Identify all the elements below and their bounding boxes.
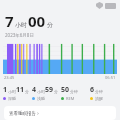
staticText: 分 bbox=[54, 89, 58, 94]
button[interactable]: 查看睡眠报告 › bbox=[4, 106, 116, 120]
other: Shield bbox=[96, 2, 103, 9]
staticText: 00 bbox=[28, 11, 46, 31]
staticText: 分钟 bbox=[95, 89, 103, 94]
staticText: 23:45 bbox=[4, 75, 15, 80]
staticText: 浅睡 bbox=[37, 96, 45, 101]
staticText: 06:51 bbox=[105, 75, 116, 80]
staticText: 1 bbox=[3, 85, 8, 95]
staticText: REM bbox=[66, 96, 75, 101]
staticText: 小时 bbox=[15, 21, 27, 29]
staticText: 深睡 bbox=[8, 96, 16, 101]
staticText: 2023年6月8日 bbox=[5, 32, 34, 38]
staticText: 分 bbox=[25, 89, 29, 94]
staticText: 11 bbox=[16, 85, 25, 95]
staticText: 6 bbox=[90, 85, 95, 95]
button[interactable]: Sleep stages chart bbox=[3, 42, 117, 74]
staticText: 清醒 bbox=[95, 96, 103, 101]
button[interactable]: 4 bbox=[31, 85, 60, 101]
staticText: 小时 bbox=[37, 89, 45, 94]
staticText: 查看睡眠报告 › bbox=[9, 110, 39, 116]
staticText: 7 bbox=[5, 11, 14, 31]
button[interactable]: 6 bbox=[89, 85, 118, 101]
staticText: 小时 bbox=[8, 89, 16, 94]
other: Battery bbox=[105, 3, 116, 9]
staticText: 4 bbox=[32, 85, 37, 95]
button[interactable]: 50 bbox=[60, 85, 89, 101]
staticText: 59 bbox=[45, 85, 54, 95]
button[interactable]: 1 bbox=[2, 85, 31, 101]
staticText: 分钟 bbox=[70, 89, 78, 94]
staticText: 50 bbox=[61, 85, 70, 95]
staticText: 分 bbox=[47, 21, 53, 29]
